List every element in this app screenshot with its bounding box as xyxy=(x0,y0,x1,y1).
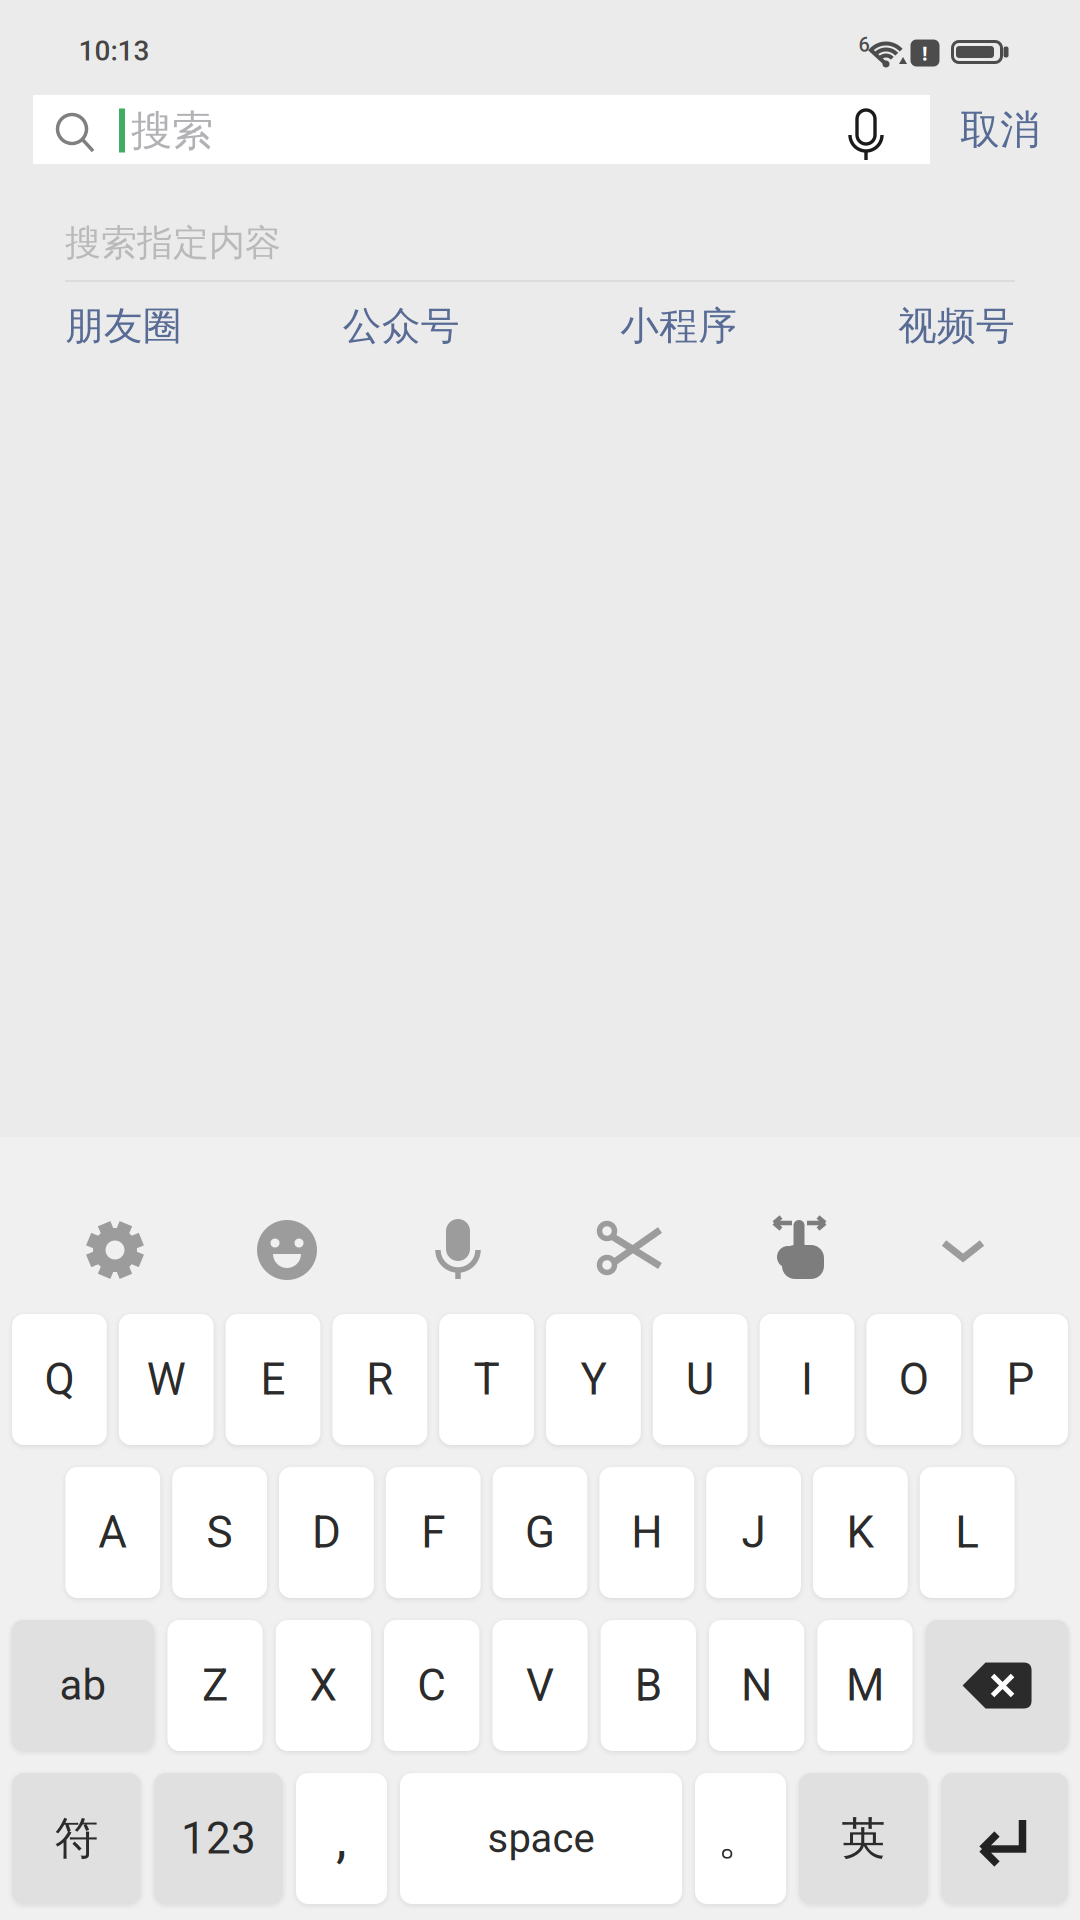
button[interactable]: S xyxy=(172,1467,267,1598)
button[interactable]: L xyxy=(920,1467,1015,1598)
button[interactable]: 。 xyxy=(695,1773,786,1904)
staticText: H xyxy=(631,1507,662,1558)
button[interactable] xyxy=(941,1773,1068,1904)
button[interactable]: 公众号 xyxy=(343,302,460,350)
staticText: P xyxy=(1007,1354,1035,1405)
staticText: ab xyxy=(59,1661,106,1710)
button[interactable]: F xyxy=(386,1467,481,1598)
staticText: U xyxy=(686,1354,715,1405)
staticText: 123 xyxy=(181,1813,256,1864)
staticText: O xyxy=(899,1354,929,1405)
button[interactable] xyxy=(33,95,930,164)
staticText: I xyxy=(801,1354,813,1405)
button[interactable]: I xyxy=(760,1314,854,1445)
button[interactable]: K xyxy=(813,1467,908,1598)
staticText: 搜索 xyxy=(131,106,213,156)
button[interactable]: O xyxy=(866,1314,961,1445)
staticText: M xyxy=(846,1660,884,1711)
staticText: 符 xyxy=(54,1811,98,1866)
button[interactable] xyxy=(925,1620,1068,1751)
button[interactable]: G xyxy=(493,1467,587,1598)
button[interactable]: 视频号 xyxy=(898,302,1015,350)
button[interactable]: Y xyxy=(546,1314,641,1445)
staticText: , xyxy=(336,1807,347,1870)
staticText: Q xyxy=(44,1354,74,1405)
button[interactable]: M xyxy=(817,1620,912,1751)
button[interactable]: D xyxy=(279,1467,374,1598)
staticText: D xyxy=(312,1507,341,1558)
button[interactable]: X xyxy=(276,1620,371,1751)
button[interactable] xyxy=(763,1213,837,1287)
staticText: 取消 xyxy=(960,105,1040,154)
staticText: A xyxy=(98,1507,127,1558)
button[interactable]: U xyxy=(653,1314,748,1445)
staticText: B xyxy=(635,1660,662,1711)
button[interactable]: H xyxy=(599,1467,694,1598)
button[interactable]: 朋友圈 xyxy=(65,302,182,350)
staticText: S xyxy=(207,1507,233,1558)
button[interactable] xyxy=(594,1214,666,1286)
staticText: N xyxy=(741,1660,772,1711)
staticText: 。 xyxy=(717,1809,763,1867)
button[interactable] xyxy=(938,1235,988,1265)
button[interactable]: 小程序 xyxy=(620,302,737,350)
button[interactable]: P xyxy=(973,1314,1068,1445)
button[interactable]: 英 xyxy=(799,1773,928,1904)
button[interactable]: A xyxy=(65,1467,160,1598)
staticText: 10:13 xyxy=(78,35,149,67)
staticText: 搜索指定内容 xyxy=(65,221,281,265)
button[interactable] xyxy=(252,1215,322,1285)
staticText: K xyxy=(846,1507,874,1558)
button[interactable]: T xyxy=(439,1314,534,1445)
staticText: G xyxy=(525,1507,555,1558)
staticText: ! xyxy=(922,40,928,66)
staticText: 朋友圈 xyxy=(65,302,182,350)
staticText: R xyxy=(366,1354,393,1405)
button[interactable]: space xyxy=(400,1773,682,1904)
staticText: F xyxy=(421,1507,445,1558)
button[interactable]: Q xyxy=(12,1314,107,1445)
staticText: 视频号 xyxy=(898,302,1015,350)
staticText: C xyxy=(417,1660,446,1711)
staticText: 小程序 xyxy=(620,302,737,350)
button[interactable]: 取消 xyxy=(935,95,1065,165)
button[interactable]: B xyxy=(601,1620,696,1751)
button[interactable]: Z xyxy=(167,1620,263,1751)
button[interactable] xyxy=(423,1214,493,1284)
staticText: J xyxy=(742,1507,766,1558)
staticText: Y xyxy=(580,1354,606,1405)
staticText: space xyxy=(487,1815,594,1862)
staticText: 公众号 xyxy=(343,302,460,350)
staticText: E xyxy=(260,1354,285,1405)
button[interactable]: 123 xyxy=(154,1773,283,1904)
button[interactable]: C xyxy=(384,1620,479,1751)
button[interactable]: E xyxy=(226,1314,320,1445)
staticText: W xyxy=(147,1354,186,1405)
staticText: V xyxy=(526,1660,554,1711)
staticText: Z xyxy=(202,1660,228,1711)
staticText: T xyxy=(474,1354,500,1405)
button[interactable] xyxy=(80,1215,150,1285)
button[interactable]: , xyxy=(296,1773,387,1904)
button[interactable]: V xyxy=(492,1620,588,1751)
staticText: L xyxy=(955,1507,979,1558)
button[interactable]: W xyxy=(119,1314,214,1445)
staticText: X xyxy=(309,1660,337,1711)
button[interactable]: N xyxy=(709,1620,804,1751)
staticText: 6 xyxy=(858,33,869,57)
button[interactable]: J xyxy=(706,1467,801,1598)
staticText: 英 xyxy=(841,1811,885,1866)
button[interactable]: ab xyxy=(11,1620,154,1751)
button[interactable]: R xyxy=(332,1314,427,1445)
button[interactable]: 符 xyxy=(12,1773,141,1904)
